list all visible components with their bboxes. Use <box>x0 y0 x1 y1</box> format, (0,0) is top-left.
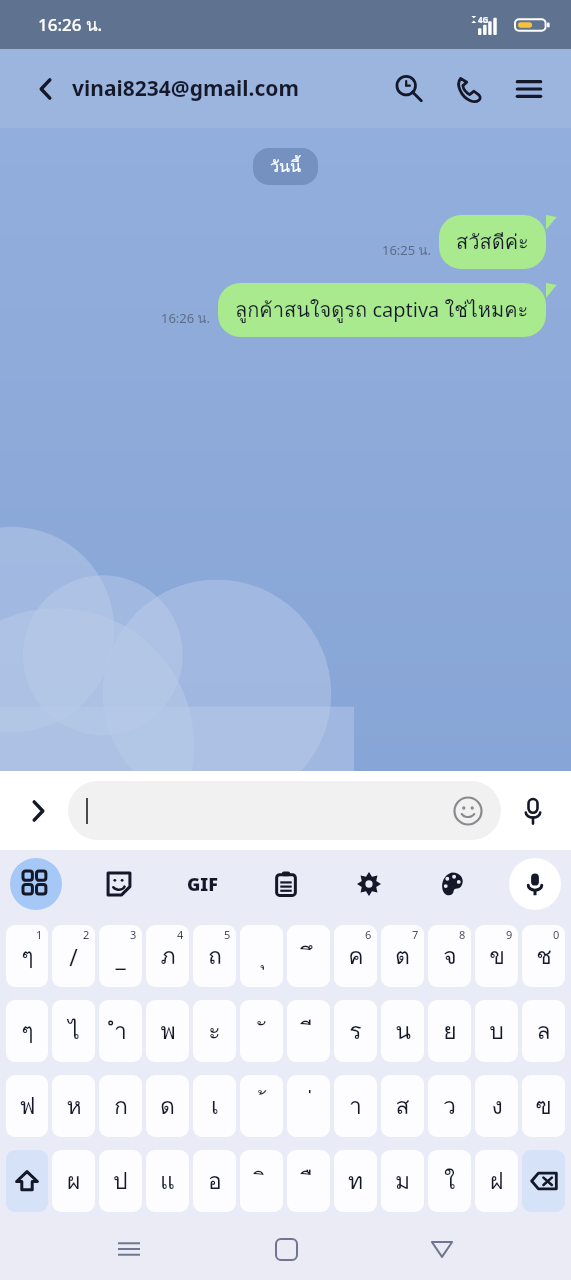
button[interactable]: ย <box>428 1000 471 1062</box>
button[interactable]: ร <box>334 1000 377 1062</box>
button[interactable]: ฝ <box>475 1150 518 1212</box>
button[interactable]: Back <box>414 1221 470 1277</box>
button[interactable]: แ <box>146 1150 189 1212</box>
button[interactable]: ๆ <box>6 1000 48 1062</box>
staticText: ิ <box>258 1163 266 1200</box>
button[interactable]: Backspace <box>522 1150 565 1212</box>
button[interactable]: Voice message <box>509 787 557 835</box>
staticText: GIF <box>187 872 218 897</box>
button[interactable]: ึ <box>287 925 330 987</box>
button[interactable]: เ <box>193 1075 236 1137</box>
button[interactable]: ฟ <box>6 1075 48 1137</box>
staticText: ๆ <box>21 1013 34 1050</box>
staticText: ื <box>305 1163 313 1200</box>
button[interactable]: ส <box>381 1075 424 1137</box>
button[interactable]: ข <box>475 925 518 987</box>
button[interactable]: ล <box>522 1000 565 1062</box>
button[interactable]: ้ <box>240 1075 283 1137</box>
button[interactable]: Emoji <box>451 794 485 828</box>
button[interactable]: ั <box>240 1000 283 1062</box>
button[interactable]: ภ <box>146 925 189 987</box>
button[interactable]: ต <box>381 925 424 987</box>
button[interactable]: บ <box>475 1000 518 1062</box>
button[interactable]: GIF <box>176 858 228 910</box>
button[interactable]: ฃ <box>522 1075 565 1137</box>
button[interactable]: Search history <box>387 67 431 111</box>
button[interactable]: สวัสดีค่ะ <box>439 215 557 269</box>
button[interactable]: ว <box>428 1075 471 1137</box>
button[interactable]: Settings <box>343 858 395 910</box>
button[interactable]: อ <box>193 1150 236 1212</box>
button[interactable]: ใ <box>428 1150 471 1212</box>
button[interactable]: ก <box>99 1075 142 1137</box>
button[interactable]: Expand actions <box>14 787 62 835</box>
staticText: 6 <box>365 927 372 942</box>
button[interactable]: น <box>381 1000 424 1062</box>
button[interactable]: จ <box>428 925 471 987</box>
staticText: ้ <box>258 1088 266 1125</box>
staticText: เ <box>211 1088 219 1125</box>
button[interactable]: ห <box>52 1075 95 1137</box>
button[interactable]: ป <box>99 1150 142 1212</box>
button[interactable]: ะ <box>193 1000 236 1062</box>
button[interactable]: Themes <box>426 858 478 910</box>
staticText: ถ <box>208 938 222 975</box>
staticText: ี <box>305 1013 313 1050</box>
staticText: ะ <box>208 1013 221 1050</box>
button[interactable]: _ <box>99 925 142 987</box>
staticText: ไ <box>68 1013 80 1050</box>
staticText: 16:26 น. <box>38 11 103 38</box>
staticText: 16:25 น. <box>382 240 431 261</box>
button[interactable]: ๆ <box>6 925 48 987</box>
staticText: ช <box>536 938 552 975</box>
staticText: ำ <box>114 1013 127 1050</box>
staticText: 4 <box>177 927 184 942</box>
button[interactable]: Back <box>26 69 66 109</box>
staticText: ห <box>66 1088 82 1125</box>
button[interactable]: ด <box>146 1075 189 1137</box>
button[interactable]: พ <box>146 1000 189 1062</box>
button[interactable]: Keyboard modes <box>10 858 62 910</box>
staticText: ข <box>489 938 505 975</box>
staticText: า <box>349 1088 362 1125</box>
staticText: ว <box>443 1088 456 1125</box>
button[interactable]: ิ <box>240 1150 283 1212</box>
button[interactable]: ่ <box>287 1075 330 1137</box>
staticText: 0 <box>553 927 560 942</box>
button[interactable]: Voice input <box>509 858 561 910</box>
staticText: ภ <box>160 938 176 975</box>
button[interactable]: ลูกค้าสนใจดูรถ captiva ใช่ไหมคะ <box>218 283 557 337</box>
button[interactable]: ง <box>475 1075 518 1137</box>
button[interactable]: Home <box>258 1221 314 1277</box>
staticText: 3 <box>130 927 137 942</box>
button[interactable]: ท <box>334 1150 377 1212</box>
staticText: ึ <box>305 938 313 975</box>
button[interactable]: ุ <box>240 925 283 987</box>
button[interactable]: Call <box>447 67 491 111</box>
button[interactable]: ี <box>287 1000 330 1062</box>
button[interactable]: Shift <box>6 1150 48 1212</box>
button[interactable]: ม <box>381 1150 424 1212</box>
staticText: ผ <box>67 1163 81 1200</box>
button[interactable]: ถ <box>193 925 236 987</box>
staticText: ใ <box>444 1163 456 1200</box>
button[interactable]: ื <box>287 1150 330 1212</box>
button[interactable]: ค <box>334 925 377 987</box>
button[interactable]: า <box>334 1075 377 1137</box>
staticText: ด <box>160 1088 175 1125</box>
button[interactable]: / <box>52 925 95 987</box>
button[interactable]: ำ <box>99 1000 142 1062</box>
button[interactable]: Emoji <box>68 781 501 840</box>
button[interactable]: ช <box>522 925 565 987</box>
staticText: ก <box>114 1088 128 1125</box>
button[interactable]: ผ <box>52 1150 95 1212</box>
button[interactable]: ไ <box>52 1000 95 1062</box>
button[interactable]: Menu <box>507 67 551 111</box>
button[interactable]: Stickers <box>93 858 145 910</box>
staticText: ม <box>395 1163 411 1200</box>
staticText: 4G <box>478 14 489 25</box>
button[interactable]: Recent apps <box>101 1221 157 1277</box>
staticText: ฟ <box>19 1088 36 1125</box>
staticText: _ <box>115 941 126 972</box>
button[interactable]: Clipboard <box>260 858 312 910</box>
